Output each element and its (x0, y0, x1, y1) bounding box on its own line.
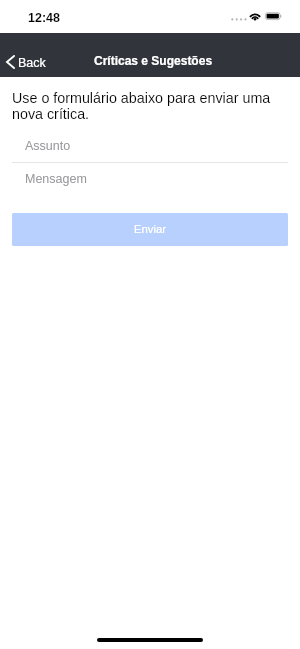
button[interactable]: Assunto (12, 130, 288, 162)
staticText: 12:48 (28, 11, 60, 25)
staticText: Críticas e Sugestões (94, 54, 213, 67)
staticText: Use o formulário abaixo para enviar uma … (12, 90, 288, 122)
staticText: Enviar (134, 223, 167, 236)
button[interactable]: Enviar (12, 213, 288, 246)
staticText: Assunto (25, 139, 71, 153)
button[interactable]: Back (0, 53, 54, 73)
staticText: Back (18, 56, 46, 70)
button[interactable]: Mensagem (12, 163, 288, 195)
staticText: Mensagem (25, 172, 87, 186)
